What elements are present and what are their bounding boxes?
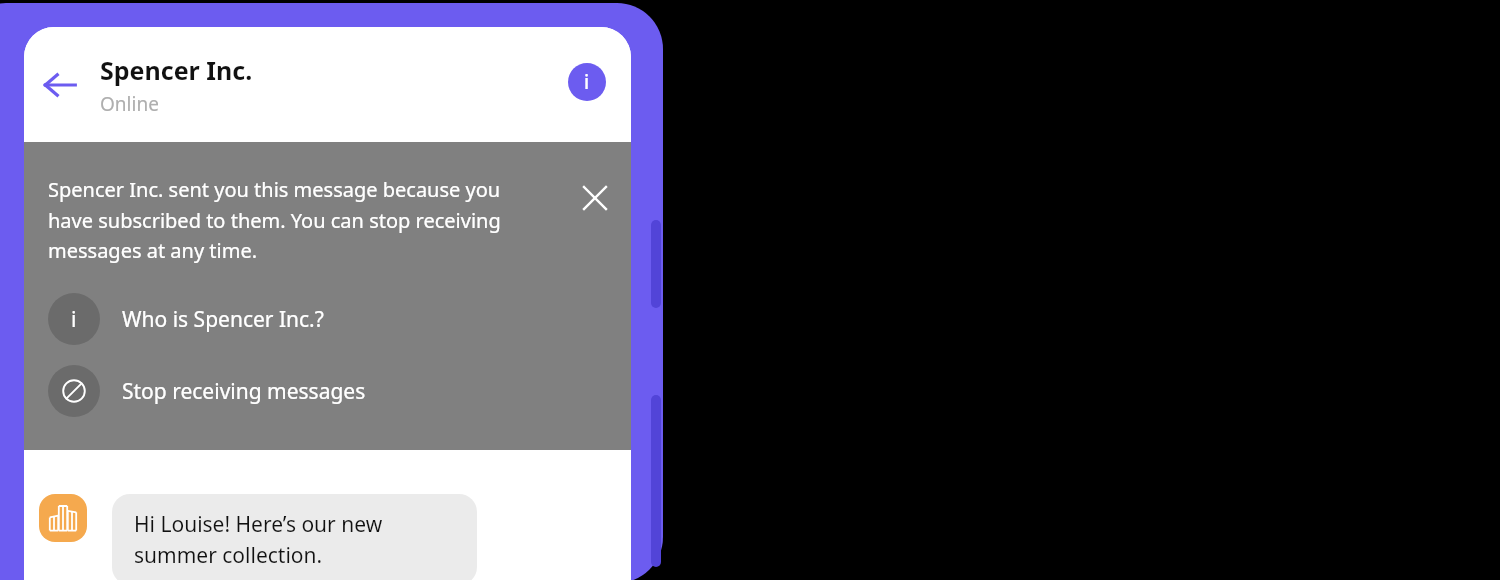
staticText: Stop receiving messages [122,377,366,406]
staticText: Hi Louise! Here’s our new summer collect… [134,510,455,569]
staticText: i [584,69,590,95]
staticText: Who is Spencer Inc.? [122,305,324,334]
staticText: Spencer Inc. sent you this message becau… [48,176,538,263]
button[interactable]: i [24,293,631,345]
button[interactable]: Close [573,176,617,220]
button[interactable]: Stop receiving messages [24,365,631,417]
staticText: Spencer Inc. [100,53,253,87]
button[interactable]: Back [32,57,88,113]
button[interactable]: Hi Louise! Here’s our new summer collect… [112,494,477,580]
staticText: i [71,305,77,334]
staticText: Online [100,91,159,117]
button[interactable]: Info [568,63,606,101]
